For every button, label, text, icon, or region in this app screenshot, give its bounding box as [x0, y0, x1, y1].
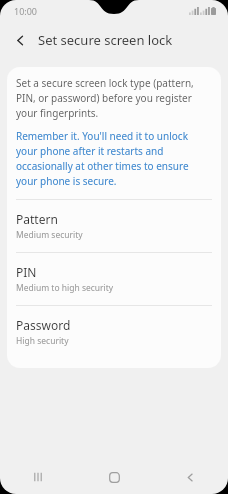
- staticText: Remember it. You'll need it to unlock yo…: [16, 129, 212, 188]
- button[interactable]: Password: [7, 306, 221, 358]
- button[interactable]: Back: [152, 460, 228, 494]
- staticText: Medium to high security: [16, 282, 114, 294]
- staticText: 10:00: [14, 5, 38, 17]
- button[interactable]: PIN: [7, 253, 221, 305]
- button[interactable]: Pattern: [7, 200, 221, 252]
- staticText: Set a secure screen lock type (pattern, …: [16, 76, 212, 120]
- staticText: PIN: [16, 264, 37, 280]
- staticText: High security: [16, 335, 69, 347]
- staticText: Pattern: [16, 211, 58, 227]
- button[interactable]: Navigate up: [6, 26, 34, 54]
- staticText: Medium security: [16, 229, 83, 241]
- button[interactable]: Recent apps: [0, 460, 76, 494]
- button[interactable]: Home: [76, 460, 152, 494]
- staticText: Set secure screen lock: [38, 31, 173, 49]
- staticText: Password: [16, 317, 71, 333]
